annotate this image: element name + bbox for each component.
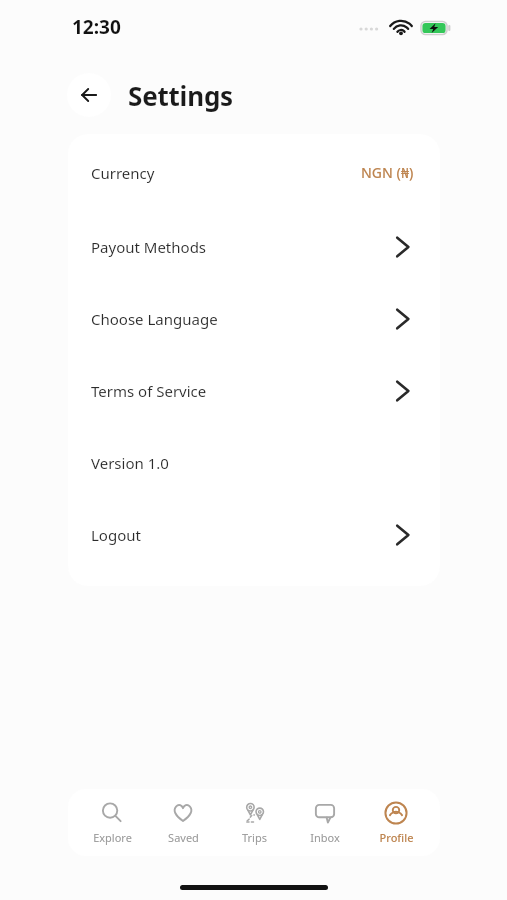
button[interactable]: Choose Language (68, 283, 440, 355)
staticText: Logout (91, 525, 141, 545)
button[interactable]: Currency (68, 134, 440, 211)
staticText: Payout Methods (91, 237, 207, 257)
staticText: Inbox (310, 830, 340, 845)
button[interactable]: Terms of Service (68, 355, 440, 427)
button[interactable]: Logout (68, 499, 440, 571)
button[interactable]: Payout Methods (68, 211, 440, 283)
staticText: Trips (242, 830, 267, 845)
button[interactable]: Trips (221, 789, 287, 856)
staticText: Explore (93, 830, 132, 845)
button[interactable]: Saved (150, 789, 216, 856)
staticText: Saved (168, 830, 199, 845)
staticText: Profile (379, 830, 414, 845)
staticText: Currency (91, 163, 155, 183)
staticText: Choose Language (91, 309, 218, 329)
staticText: 12:30 (72, 14, 121, 40)
staticText: NGN (₦) (361, 163, 414, 182)
button[interactable]: Explore (79, 789, 145, 856)
button[interactable]: Profile (363, 789, 429, 856)
staticText: Terms of Service (91, 381, 207, 401)
staticText: Version 1.0 (91, 453, 169, 473)
button[interactable]: Inbox (292, 789, 358, 856)
staticText: Settings (128, 78, 233, 113)
button[interactable]: Version 1.0 (68, 427, 440, 499)
button[interactable]: Back (67, 73, 111, 117)
